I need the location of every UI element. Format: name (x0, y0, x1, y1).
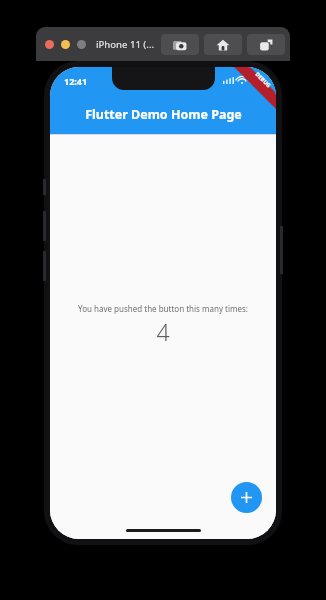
button[interactable]: Rotate (247, 34, 285, 55)
staticText: You have pushed the button this many tim… (78, 303, 248, 314)
button[interactable]: Close (45, 40, 54, 49)
staticText: 4 (156, 316, 170, 347)
staticText: 12:41 (64, 75, 88, 87)
button[interactable]: Zoom (77, 40, 86, 49)
staticText: DEBUG (254, 70, 273, 89)
button[interactable]: Home (204, 34, 242, 55)
button[interactable]: Screenshot (161, 34, 199, 55)
button[interactable]: Increment (231, 482, 262, 513)
staticText: Flutter Demo Home Page (85, 106, 242, 123)
staticText: iPhone 11 (... (96, 38, 155, 51)
button[interactable]: Minimize (61, 40, 70, 49)
